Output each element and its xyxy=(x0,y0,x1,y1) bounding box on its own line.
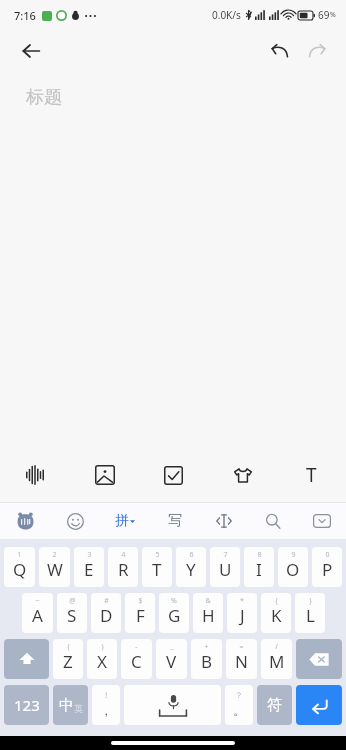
button[interactable]: % xyxy=(159,593,189,633)
staticText: 。 xyxy=(233,703,245,718)
button[interactable]: & xyxy=(193,593,223,633)
button[interactable]: Numbers xyxy=(4,685,49,725)
staticText: 写 xyxy=(168,512,182,530)
staticText: X xyxy=(97,650,107,673)
staticText: ！ xyxy=(102,690,110,700)
button[interactable]: 5 xyxy=(142,547,172,587)
button[interactable]: } xyxy=(295,593,325,633)
button[interactable]: Baidu input xyxy=(0,503,50,539)
button[interactable]: Pinyin mode xyxy=(100,503,150,539)
button[interactable]: 1 xyxy=(4,547,35,587)
staticText: 拼 xyxy=(115,512,129,530)
staticText: T xyxy=(152,558,162,581)
staticText: 4 xyxy=(121,550,126,560)
staticText: ~ xyxy=(35,596,40,606)
staticText: 8 xyxy=(257,550,262,560)
button[interactable]: 2 xyxy=(39,547,70,587)
button[interactable]: 3 xyxy=(74,547,104,587)
button[interactable]: 4 xyxy=(108,547,138,587)
button[interactable]: Image xyxy=(70,448,139,502)
button[interactable]: Space xyxy=(124,685,221,725)
button[interactable]: Backspace xyxy=(296,639,342,679)
button[interactable]: Handwriting xyxy=(150,503,199,539)
staticText: T xyxy=(306,462,317,488)
staticText: I xyxy=(256,558,262,581)
staticText: F xyxy=(136,604,145,627)
staticText: & xyxy=(205,596,211,606)
staticText: 69 xyxy=(318,8,330,22)
button[interactable]: Cursor xyxy=(199,503,248,539)
staticText: = xyxy=(239,642,244,652)
staticText: E xyxy=(84,558,94,581)
button[interactable]: Redo xyxy=(298,32,336,70)
staticText: 9 xyxy=(291,550,296,560)
button[interactable]: Emoji xyxy=(50,503,100,539)
button[interactable]: ) xyxy=(87,639,117,679)
staticText: # xyxy=(104,596,109,606)
button[interactable]: Chinese English toggle xyxy=(53,685,88,725)
button[interactable]: Symbols xyxy=(257,685,292,725)
button[interactable]: $ xyxy=(125,593,155,633)
staticText: Q xyxy=(13,558,27,581)
staticText: 2 xyxy=(52,550,57,560)
staticText: 符 xyxy=(267,696,282,715)
button[interactable]: 0 xyxy=(312,547,342,587)
staticText: 7 xyxy=(223,550,228,560)
button[interactable]: Text format xyxy=(277,448,346,502)
button[interactable]: 9 xyxy=(278,547,308,587)
staticText: $ xyxy=(138,596,143,606)
staticText: @ xyxy=(69,596,76,606)
staticText: ？ xyxy=(235,690,243,700)
button[interactable]: ~ xyxy=(22,593,53,633)
button[interactable]: Hide keyboard xyxy=(297,503,346,539)
staticText: 英 xyxy=(74,703,83,714)
staticText: ) xyxy=(101,642,104,652)
staticText: N xyxy=(235,650,248,673)
button[interactable]: 8 xyxy=(244,547,274,587)
button[interactable]: + xyxy=(191,639,222,679)
staticText: L xyxy=(306,604,315,627)
button[interactable]: Enter xyxy=(296,685,342,725)
staticText: C xyxy=(131,650,142,673)
button[interactable]: Voice xyxy=(0,448,70,502)
staticText: 0 xyxy=(325,550,330,560)
staticText: 0.0K/s xyxy=(212,8,241,22)
button[interactable]: = xyxy=(226,639,257,679)
staticText: 中 xyxy=(59,696,74,715)
staticText: 3 xyxy=(87,550,92,560)
button[interactable]: 7 xyxy=(210,547,240,587)
staticText: V xyxy=(166,650,177,673)
button[interactable]: * xyxy=(227,593,257,633)
button[interactable]: - xyxy=(121,639,152,679)
staticText: 5 xyxy=(155,550,160,560)
staticText: ， xyxy=(100,703,112,718)
staticText: * xyxy=(240,596,244,606)
staticText: K xyxy=(271,604,282,627)
staticText: 1 xyxy=(17,550,22,560)
button[interactable]: { xyxy=(261,593,291,633)
staticText: % xyxy=(330,10,336,20)
button[interactable]: 6 xyxy=(176,547,206,587)
staticText: P xyxy=(322,558,333,581)
button[interactable]: ？ xyxy=(225,685,253,725)
button[interactable]: Back xyxy=(12,32,50,70)
button[interactable]: Search xyxy=(248,503,297,539)
button[interactable]: # xyxy=(91,593,121,633)
button[interactable]: Checklist xyxy=(139,448,208,502)
button[interactable]: @ xyxy=(57,593,87,633)
button[interactable]: ！ xyxy=(92,685,120,725)
staticText: ( xyxy=(67,642,70,652)
staticText: H xyxy=(202,604,215,627)
staticText: G xyxy=(168,604,181,627)
staticText: } xyxy=(309,596,312,606)
button[interactable]: _ xyxy=(156,639,187,679)
staticText: Y xyxy=(186,558,196,581)
staticText: Z xyxy=(63,650,73,673)
button[interactable]: ( xyxy=(53,639,83,679)
staticText: _ xyxy=(170,642,174,652)
button[interactable]: / xyxy=(261,639,292,679)
button[interactable]: Undo xyxy=(260,32,298,70)
staticText: - xyxy=(135,642,138,652)
button[interactable]: Shift xyxy=(4,639,49,679)
button[interactable]: Style xyxy=(208,448,277,502)
